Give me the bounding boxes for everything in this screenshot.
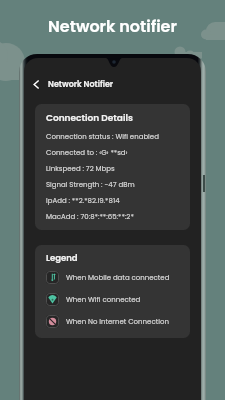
- staticText: Network notifier: [0, 15, 225, 37]
- staticText: Signal Strength : -47 dBm: [46, 180, 135, 190]
- button[interactable]: When Wifi connected: [46, 293, 180, 306]
- staticText: Network Notifier: [48, 79, 114, 90]
- button[interactable]: When No Internet Connection: [46, 315, 180, 328]
- button[interactable]: When Mobile data connected: [46, 271, 180, 284]
- staticText: When Wifi connected: [66, 295, 141, 305]
- staticText: Connection Details: [46, 112, 133, 125]
- button[interactable]: Back: [28, 76, 44, 92]
- staticText: When Mobile data connected: [66, 273, 170, 283]
- staticText: Connected to : ‹G› **sd›: [46, 148, 128, 158]
- staticText: Connection status : Wifi enabled: [46, 132, 159, 142]
- staticText: When No Internet Connection: [66, 317, 169, 327]
- staticText: Linkspeed : 72 Mbps: [46, 164, 115, 174]
- staticText: Legend: [46, 252, 78, 264]
- staticText: MacAdd : 70:8*:**:65:**:2*: [46, 212, 134, 222]
- staticText: IpAdd : **2.*82.I9.*814: [46, 196, 120, 206]
